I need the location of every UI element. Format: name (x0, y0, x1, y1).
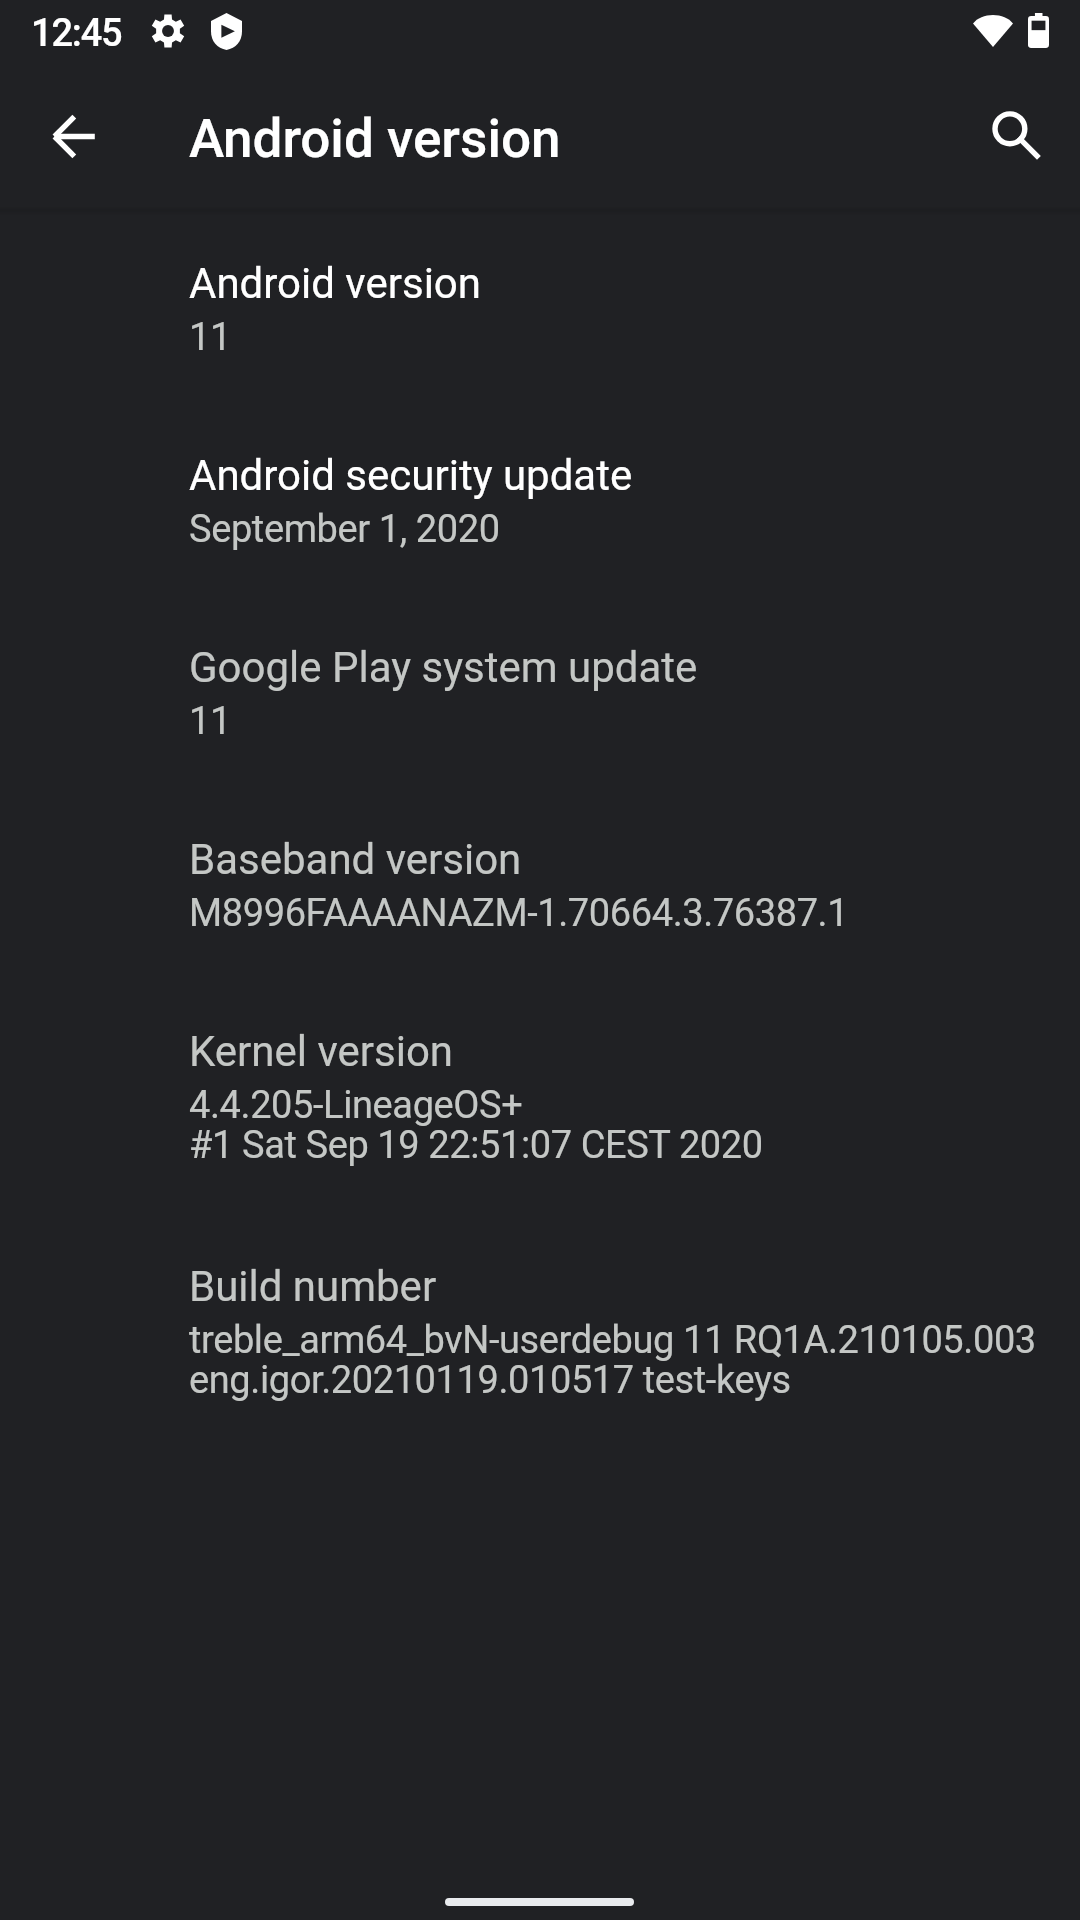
button[interactable]: Android security update (0, 404, 1080, 596)
staticText: eng.igor.20210119.010517 test-keys (189, 1358, 791, 1403)
staticText: Android version (189, 108, 561, 170)
button[interactable]: Build number (0, 1215, 1080, 1450)
staticText: 12:45 (31, 11, 122, 56)
staticText: 4.4.205-LineageOS+ (189, 1083, 523, 1128)
button[interactable]: Android version (0, 212, 1080, 404)
button[interactable]: Kernel version (0, 980, 1080, 1215)
button[interactable]: Google Play system update (0, 596, 1080, 788)
staticText: Google Play system update (189, 643, 698, 692)
staticText: treble_arm64_bvN-userdebug 11 RQ1A.21010… (189, 1318, 1036, 1363)
button[interactable]: Back (20, 84, 126, 190)
staticText: Baseband version (189, 835, 522, 884)
staticText: #1 Sat Sep 19 22:51:07 CEST 2020 (189, 1123, 763, 1168)
staticText: M8996FAAAANAZM-1.70664.3.76387.1 (189, 891, 849, 936)
staticText: Android security update (189, 451, 633, 500)
staticText: 11 (189, 699, 231, 744)
staticText: Android version (189, 259, 481, 308)
button[interactable]: Baseband version (0, 788, 1080, 980)
staticText: 11 (189, 315, 231, 360)
staticText: Kernel version (189, 1027, 454, 1076)
staticText: September 1, 2020 (189, 507, 500, 552)
staticText: Build number (189, 1262, 437, 1311)
button[interactable]: Search (960, 84, 1066, 190)
